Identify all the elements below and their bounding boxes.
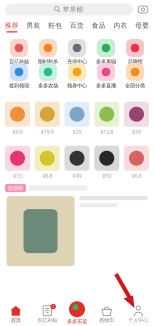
staticText: 购物车 xyxy=(99,317,114,324)
button[interactable]: ¥15 xyxy=(4,146,31,179)
button[interactable] xyxy=(79,196,147,266)
staticText: ¥8.8 xyxy=(42,172,52,179)
button[interactable]: ¥9.9 xyxy=(4,102,31,135)
button[interactable]: 充值中心 xyxy=(62,40,91,64)
staticText: 品牌馆 xyxy=(127,58,142,65)
staticText: ¥19.9 xyxy=(41,128,54,135)
staticText: 男装 xyxy=(27,22,41,30)
staticText: 1 xyxy=(52,304,54,309)
staticText: 百亿补贴 xyxy=(37,317,57,324)
button[interactable]: 全部分类 xyxy=(120,64,149,88)
staticText: 内衣 xyxy=(113,22,127,30)
staticText: ¥15 xyxy=(13,172,22,179)
button[interactable]: 多多买菜 xyxy=(67,303,87,326)
button[interactable]: 内衣 xyxy=(110,19,131,35)
staticText: ¥49 xyxy=(72,172,81,179)
button[interactable]: Scan with camera xyxy=(137,3,149,15)
button[interactable]: ¥12.8 xyxy=(93,102,120,135)
staticText: ¥29 xyxy=(72,128,81,135)
button[interactable]: ¥6.9 xyxy=(123,146,150,179)
button[interactable]: ¥29 xyxy=(63,102,90,135)
button[interactable]: 领券中心 xyxy=(62,64,91,88)
staticText: ¥12.8 xyxy=(100,128,113,135)
button[interactable]: 食品 xyxy=(88,19,110,35)
button[interactable]: 鞋包 xyxy=(44,19,66,35)
staticText: 母婴 xyxy=(135,22,149,30)
button[interactable]: 签到领现 xyxy=(4,64,33,88)
staticText: 食品 xyxy=(92,22,106,30)
button[interactable]: ¥39 xyxy=(123,102,150,135)
staticText: 签到领现 xyxy=(9,82,29,89)
button[interactable]: 首页 xyxy=(0,303,31,326)
staticText: 超值购 xyxy=(8,185,23,191)
staticText: 苹果醋 xyxy=(63,5,84,14)
staticText: 充值中心 xyxy=(67,58,87,65)
staticText: 推荐 xyxy=(5,22,19,30)
button[interactable]: 苹果醋 xyxy=(5,3,133,15)
button[interactable]: 品牌馆 xyxy=(120,40,149,64)
staticText: 鞋包 xyxy=(48,22,62,30)
staticText: 多多农场 xyxy=(38,82,58,89)
staticText: 全部分类 xyxy=(125,82,145,89)
button[interactable]: ¥8.8 xyxy=(34,146,61,179)
staticText: 百货 xyxy=(70,22,84,30)
staticText: 多多直播 xyxy=(96,82,116,89)
button[interactable]: 推荐 xyxy=(1,19,23,35)
button[interactable]: 1 xyxy=(31,303,63,326)
button[interactable]: 购物车 xyxy=(91,303,122,326)
button[interactable]: 限时秒杀 xyxy=(33,40,62,64)
staticText: 百亿补贴 xyxy=(9,58,29,65)
button[interactable] xyxy=(6,196,74,266)
button[interactable]: 百亿补贴 xyxy=(4,40,33,64)
staticText: 个人中心 xyxy=(128,317,148,324)
staticText: ¥59 xyxy=(102,172,111,179)
button[interactable]: 个人中心 xyxy=(122,303,154,326)
staticText: 多多果园 xyxy=(96,58,116,65)
staticText: 领券中心 xyxy=(67,82,87,89)
staticText: 限时秒杀 xyxy=(38,58,58,65)
staticText: ¥39 xyxy=(132,128,141,135)
staticText: ¥9.9 xyxy=(12,128,22,135)
button[interactable]: ¥49 xyxy=(63,146,90,179)
staticText: 多多买菜 xyxy=(67,318,87,325)
button[interactable]: 多多直播 xyxy=(91,64,120,88)
button[interactable]: 多多农场 xyxy=(33,64,62,88)
staticText: 首页 xyxy=(11,317,21,324)
button[interactable]: 百货 xyxy=(66,19,88,35)
button[interactable]: 母婴 xyxy=(131,19,153,35)
staticText: ¥6.9 xyxy=(131,172,141,179)
button[interactable]: ¥19.9 xyxy=(34,102,61,135)
button[interactable]: ¥59 xyxy=(93,146,120,179)
button[interactable]: 男装 xyxy=(23,19,44,35)
button[interactable]: 多多果园 xyxy=(91,40,120,64)
